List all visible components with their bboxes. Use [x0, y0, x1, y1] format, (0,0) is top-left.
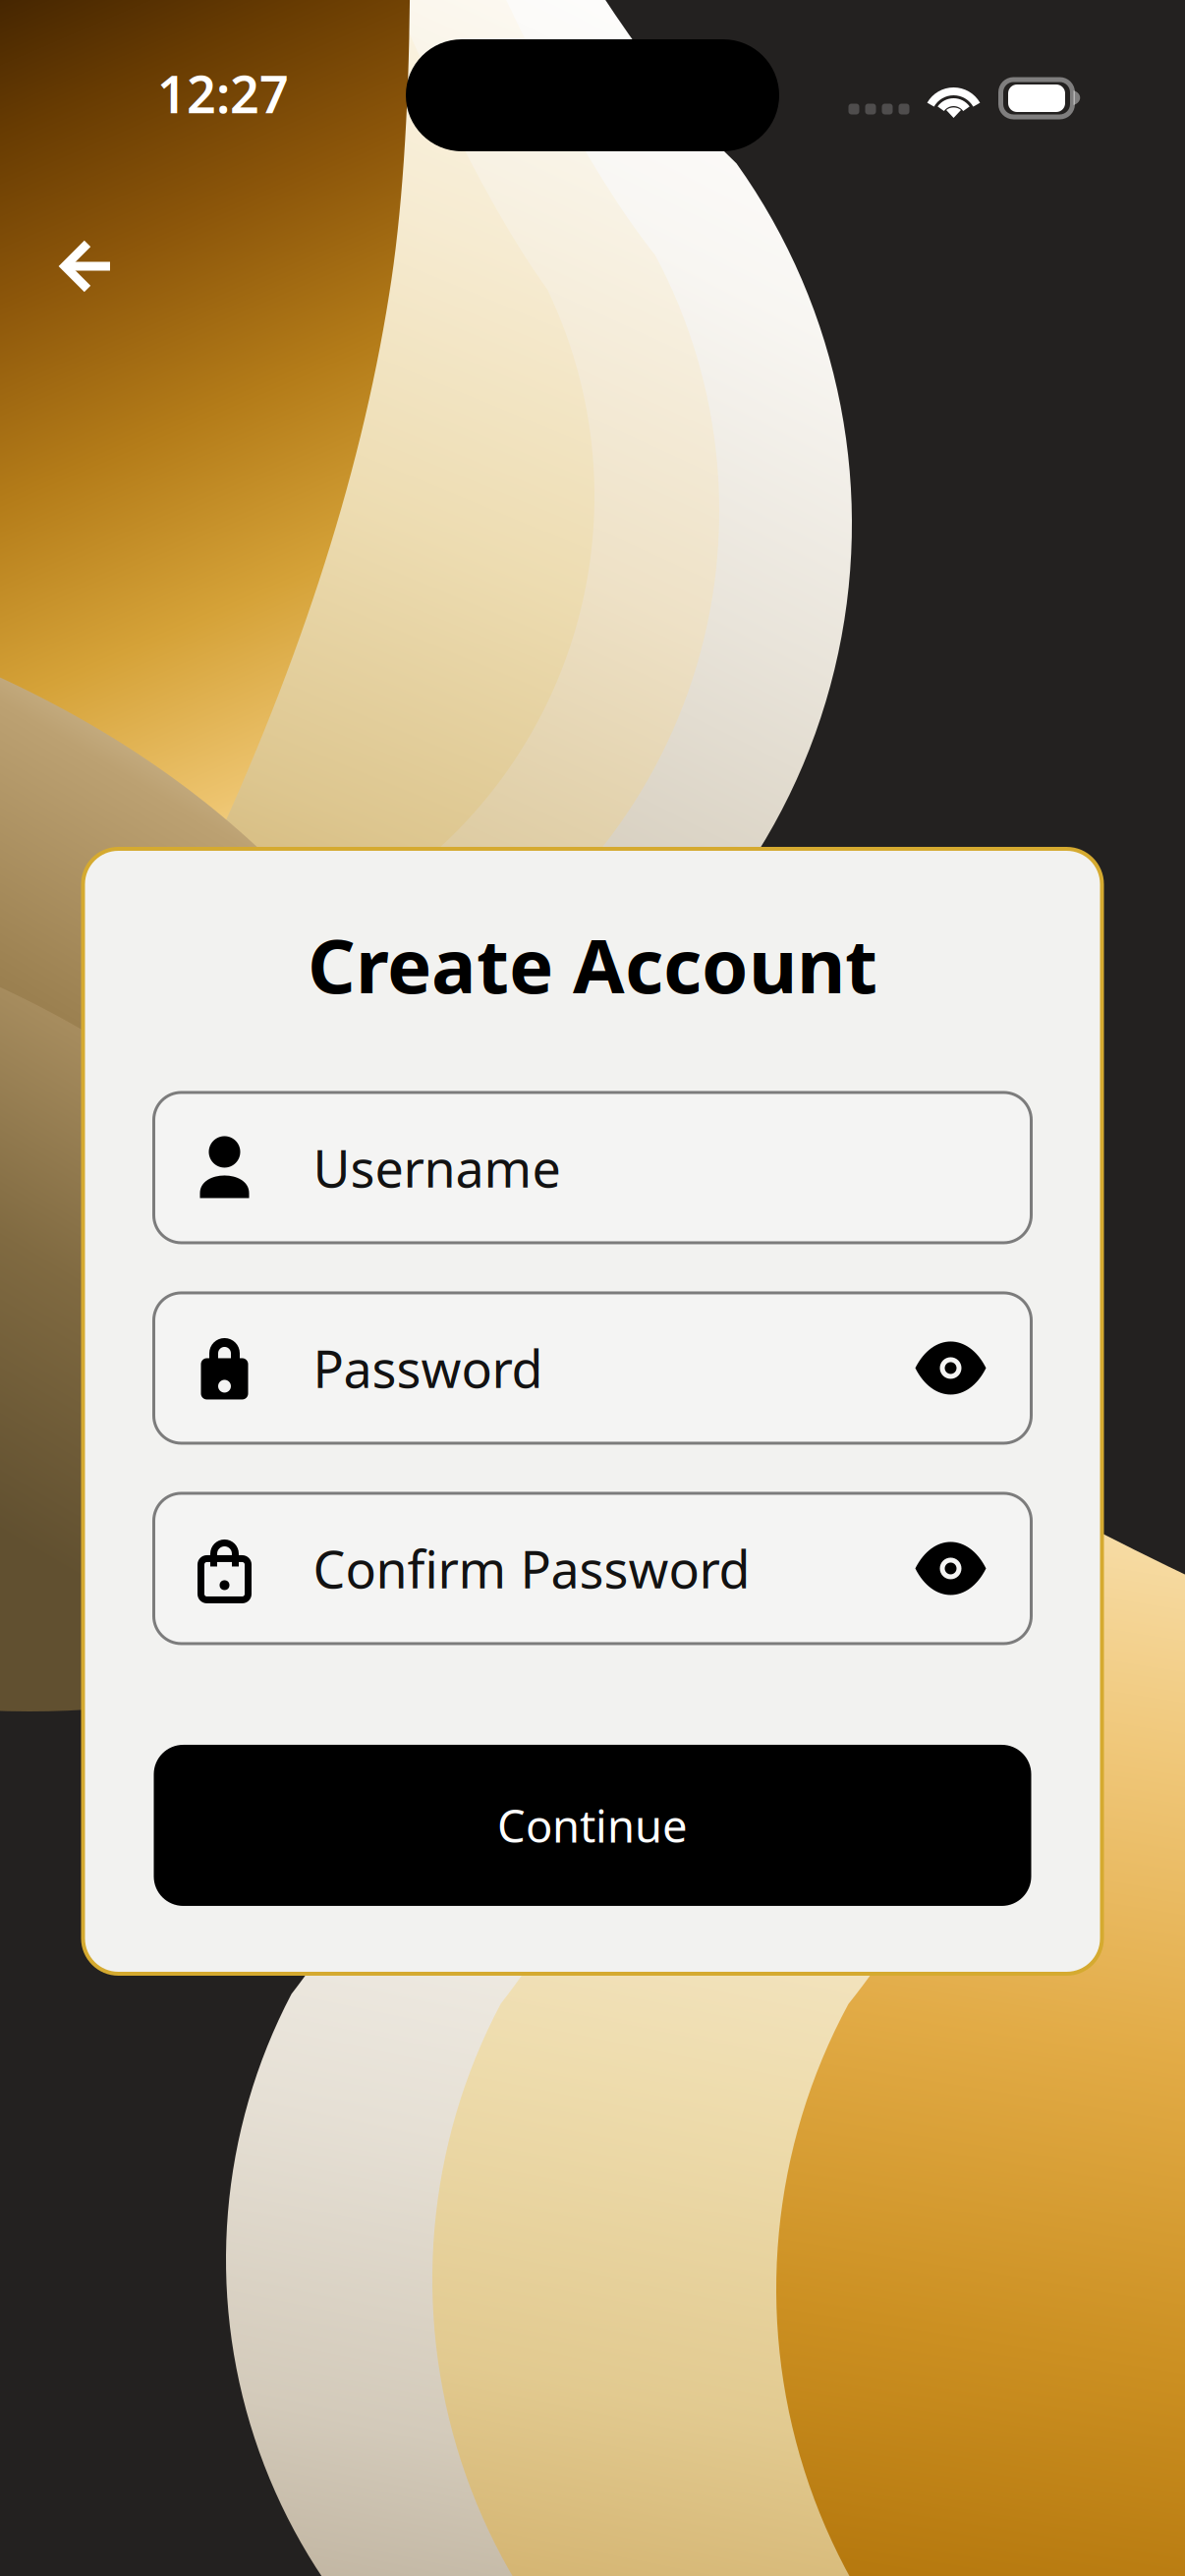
button[interactable]: Back [38, 219, 137, 313]
staticText: Username [313, 1134, 561, 1202]
staticText: 12:27 [157, 59, 289, 127]
button[interactable]: Show password [913, 1343, 988, 1394]
staticText: Create Account [308, 915, 877, 1014]
staticText: Password [313, 1334, 543, 1402]
button[interactable]: Show confirm password [913, 1543, 988, 1594]
button[interactable]: Continue [154, 1745, 1031, 1906]
staticText: Continue [497, 1796, 688, 1855]
staticText: Confirm Password [313, 1534, 750, 1602]
